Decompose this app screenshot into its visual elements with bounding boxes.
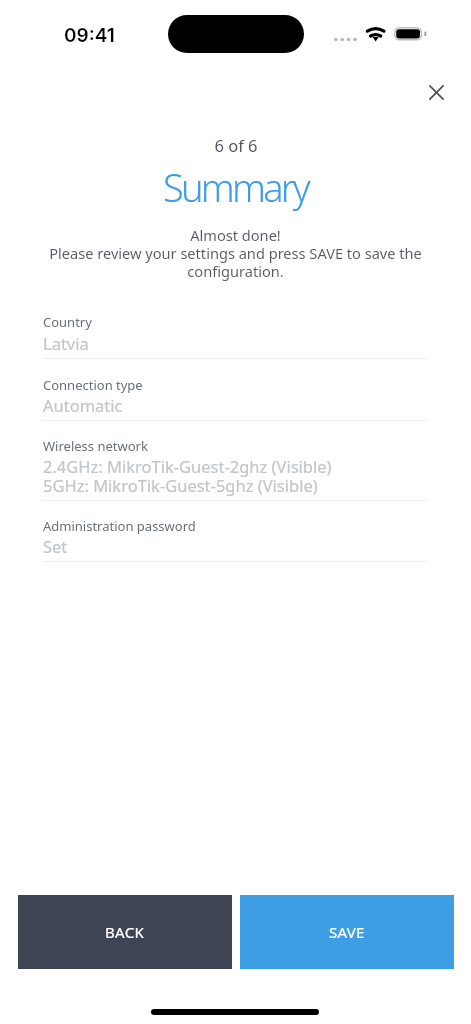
staticText: Wireless network <box>43 437 148 455</box>
staticText: Country <box>43 313 92 331</box>
staticText: Automatic <box>43 394 123 416</box>
staticText: Latvia <box>43 332 89 354</box>
button[interactable]: Close <box>414 70 459 115</box>
staticText: BACK <box>105 922 145 942</box>
staticText: Set <box>43 535 68 557</box>
staticText: Connection type <box>43 376 143 394</box>
staticText: 2.4GHz: MikroTik-Guest-2ghz (Visible) <box>43 455 332 477</box>
staticText: Almost done! Please review your settings… <box>49 225 422 282</box>
staticText: 09:41 <box>64 24 115 47</box>
button[interactable]: BACK <box>18 895 232 969</box>
staticText: SAVE <box>329 922 365 942</box>
staticText: 5GHz: MikroTik-Guest-5ghz (Visible) <box>43 474 318 496</box>
staticText: Administration password <box>43 517 196 535</box>
staticText: 6 of 6 <box>214 134 258 156</box>
button[interactable]: SAVE <box>240 895 454 969</box>
staticText: Summary <box>163 161 308 213</box>
